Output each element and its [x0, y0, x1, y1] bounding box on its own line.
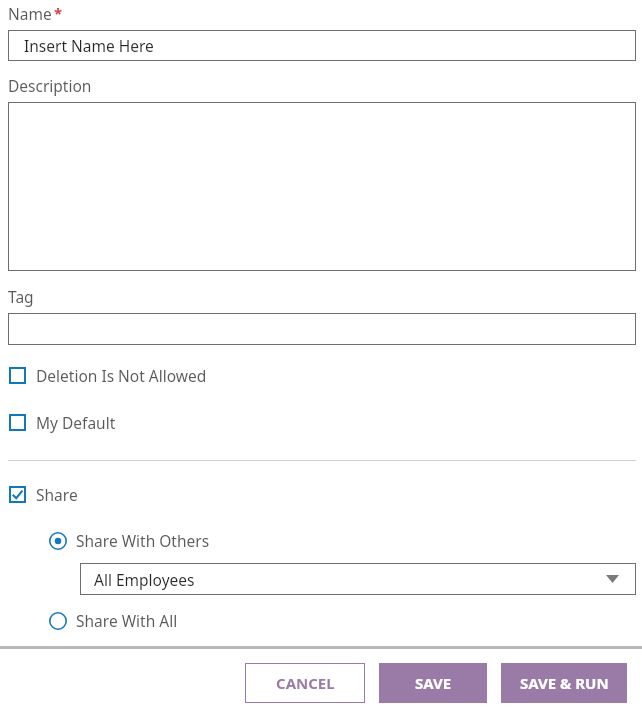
staticText: My Default: [36, 412, 116, 433]
button[interactable]: Share With Others: [0, 530, 642, 551]
staticText: SAVE & RUN: [520, 673, 609, 693]
staticText: All Employees: [94, 569, 195, 590]
button[interactable]: SAVE: [379, 663, 487, 703]
button[interactable]: Share With All: [0, 610, 642, 631]
button[interactable]: Deletion Is Not Allowed: [0, 365, 642, 386]
button[interactable]: CANCEL: [245, 663, 365, 703]
button[interactable]: Share: [0, 484, 642, 505]
button[interactable]: SAVE & RUN: [501, 663, 627, 703]
button[interactable]: My Default: [0, 412, 642, 433]
staticText: *: [54, 3, 63, 23]
staticText: Description: [8, 75, 92, 96]
staticText: CANCEL: [276, 673, 335, 693]
button[interactable]: Insert Name Here: [8, 30, 636, 61]
button[interactable]: [8, 102, 636, 271]
staticText: Share: [36, 484, 78, 505]
staticText: Share With All: [76, 610, 178, 631]
staticText: Deletion Is Not Allowed: [36, 365, 207, 386]
staticText: Share With Others: [76, 530, 210, 551]
staticText: Name: [8, 3, 52, 24]
staticText: SAVE: [415, 673, 452, 693]
button[interactable]: All Employees: [80, 563, 636, 595]
staticText: Tag: [8, 286, 34, 307]
button[interactable]: [8, 313, 636, 345]
staticText: Insert Name Here: [24, 35, 154, 56]
